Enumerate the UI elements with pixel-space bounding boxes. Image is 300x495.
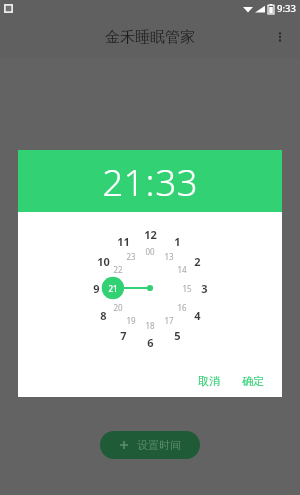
staticText: 4 bbox=[194, 308, 201, 323]
button[interactable]: More options bbox=[266, 23, 294, 51]
staticText: 9:33 bbox=[277, 2, 296, 15]
staticText: 10 bbox=[97, 254, 110, 269]
staticText: 21 bbox=[108, 283, 118, 294]
button[interactable]: 2 bbox=[186, 250, 208, 272]
staticText: 1 bbox=[174, 234, 181, 249]
staticText: 确定 bbox=[242, 374, 264, 388]
button[interactable]: 21 bbox=[102, 156, 145, 206]
staticText: 11 bbox=[117, 234, 130, 249]
button[interactable]: 6 bbox=[139, 331, 161, 353]
button[interactable]: 5 bbox=[166, 324, 188, 346]
button[interactable]: 21 bbox=[102, 277, 124, 299]
staticText: 33 bbox=[155, 156, 198, 206]
button[interactable]: 22 bbox=[107, 258, 129, 280]
staticText: 23 bbox=[126, 251, 136, 262]
staticText: : bbox=[145, 156, 155, 206]
button[interactable]: 15 bbox=[176, 277, 198, 299]
staticText: 金禾睡眠管家 bbox=[105, 28, 195, 47]
staticText: 2 bbox=[194, 254, 201, 269]
button[interactable]: 23 bbox=[120, 245, 142, 267]
staticText: 14 bbox=[177, 264, 187, 275]
staticText: 16 bbox=[177, 302, 187, 313]
button[interactable]: 33 bbox=[155, 156, 198, 206]
button[interactable]: 4 bbox=[186, 304, 208, 326]
staticText: 6 bbox=[147, 335, 154, 350]
staticText: 12 bbox=[144, 227, 157, 242]
button[interactable]: 10 bbox=[92, 250, 114, 272]
staticText: 9 bbox=[93, 281, 100, 296]
staticText: 19 bbox=[126, 315, 136, 326]
button[interactable]: 7 bbox=[112, 324, 134, 346]
staticText: 15 bbox=[182, 283, 192, 294]
button[interactable]: 20 bbox=[107, 296, 129, 318]
button[interactable]: 1 bbox=[166, 230, 188, 252]
button[interactable]: 13 bbox=[158, 245, 180, 267]
button[interactable]: 确定 bbox=[234, 370, 272, 392]
button[interactable]: 19 bbox=[120, 309, 142, 331]
button[interactable]: 16 bbox=[171, 296, 193, 318]
button[interactable]: 11 bbox=[112, 230, 134, 252]
button[interactable]: 取消 bbox=[190, 370, 228, 392]
button[interactable]: 00 bbox=[139, 240, 161, 262]
button[interactable]: 9 bbox=[85, 277, 107, 299]
staticText: 21 bbox=[102, 156, 145, 206]
staticText: 18 bbox=[145, 320, 155, 331]
button[interactable]: 12 bbox=[139, 223, 161, 245]
button[interactable]: 设置时间 bbox=[100, 431, 200, 459]
staticText: 7 bbox=[120, 328, 127, 343]
button[interactable]: 8 bbox=[92, 304, 114, 326]
staticText: 13 bbox=[164, 251, 174, 262]
button[interactable]: 14 bbox=[171, 258, 193, 280]
staticText: 3 bbox=[201, 281, 208, 296]
button[interactable]: 18 bbox=[139, 314, 161, 336]
staticText: 22 bbox=[113, 264, 123, 275]
staticText: 8 bbox=[100, 308, 107, 323]
button[interactable]: 17 bbox=[158, 309, 180, 331]
staticText: 17 bbox=[164, 315, 174, 326]
staticText: 20 bbox=[113, 302, 123, 313]
staticText: 5 bbox=[174, 328, 181, 343]
button[interactable]: 3 bbox=[193, 277, 215, 299]
staticText: 设置时间 bbox=[137, 438, 181, 452]
staticText: 取消 bbox=[198, 374, 220, 388]
staticText: 00 bbox=[145, 246, 155, 257]
